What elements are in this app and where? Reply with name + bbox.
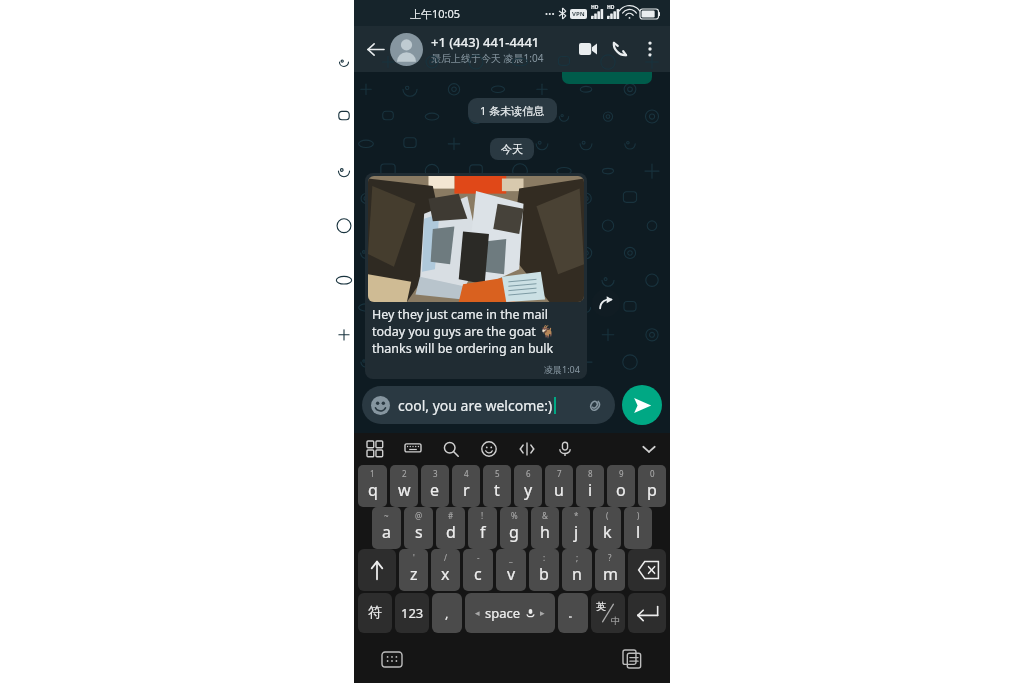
staticText: 0 xyxy=(650,468,655,479)
button[interactable]: % xyxy=(500,507,528,549)
staticText: b xyxy=(539,563,549,585)
staticText: ( xyxy=(606,510,609,521)
button[interactable]: 。 xyxy=(558,593,588,633)
button[interactable]: ; xyxy=(562,549,592,591)
staticText: ! xyxy=(481,510,484,521)
button[interactable]: @ xyxy=(404,507,433,549)
button[interactable]: Attach xyxy=(582,393,606,417)
button[interactable]: 9 xyxy=(607,465,635,507)
staticText: VPN xyxy=(572,10,585,18)
button[interactable]: 1 xyxy=(358,465,387,507)
button[interactable]: ! xyxy=(468,507,497,549)
staticText: p xyxy=(647,479,657,501)
staticText: 1 条未读信息 xyxy=(480,103,545,118)
button[interactable]: 符 xyxy=(358,593,392,633)
button[interactable]: Enter xyxy=(628,593,666,633)
staticText: ' xyxy=(413,552,415,563)
staticText: & xyxy=(542,510,548,521)
staticText: y xyxy=(524,479,533,501)
button[interactable] xyxy=(390,33,423,66)
staticText: 今天 xyxy=(501,142,523,156)
button[interactable]: Backspace xyxy=(628,549,666,591)
button[interactable]: 3 xyxy=(421,465,449,507)
staticText: : xyxy=(543,552,546,563)
button[interactable]: Send xyxy=(622,385,662,425)
button[interactable]: 6 xyxy=(514,465,542,507)
staticText: s xyxy=(415,521,423,543)
staticText: i xyxy=(588,479,593,501)
button[interactable]: Translate xyxy=(516,438,538,460)
staticText: a xyxy=(382,521,391,543)
button[interactable]: Hide keyboard xyxy=(638,438,660,460)
staticText: # xyxy=(448,510,454,521)
button[interactable]: Emoji xyxy=(478,438,500,460)
button[interactable]: Keyboard xyxy=(402,438,424,460)
button[interactable]: / xyxy=(431,549,460,591)
button[interactable]: Shift xyxy=(358,549,396,591)
button[interactable]: ~ xyxy=(372,507,401,549)
button[interactable]: 2 xyxy=(390,465,418,507)
button[interactable]: ' xyxy=(399,549,428,591)
button[interactable]: 4 xyxy=(452,465,480,507)
staticText: % xyxy=(511,510,518,521)
button[interactable]: cool, you are welcome:) xyxy=(362,386,615,424)
staticText: g xyxy=(509,521,519,543)
button[interactable]: Hey they just came in the mail today you… xyxy=(365,173,587,379)
staticText: +1 (443) 441-4441 xyxy=(431,33,540,51)
button[interactable]: Clipboard xyxy=(618,645,646,673)
staticText: 3 xyxy=(433,468,438,479)
button[interactable]: ) xyxy=(624,507,652,549)
staticText: q xyxy=(368,479,378,501)
button[interactable]: , xyxy=(432,593,462,633)
staticText: d xyxy=(446,521,456,543)
button[interactable]: - xyxy=(463,549,493,591)
button[interactable]: Video call xyxy=(572,33,604,65)
staticText: 4 xyxy=(464,468,469,479)
button[interactable]: Tools xyxy=(364,438,386,460)
staticText: 7 xyxy=(557,468,562,479)
button[interactable]: : xyxy=(529,549,559,591)
staticText: c xyxy=(474,563,482,585)
staticText: r xyxy=(463,479,470,501)
staticText: 2 xyxy=(402,468,407,479)
button[interactable]: +1 (443) 441-4441 xyxy=(431,33,572,65)
button[interactable]: ◂ xyxy=(465,593,555,633)
staticText: e xyxy=(430,479,440,501)
button[interactable]: Forward xyxy=(592,289,620,317)
button[interactable]: 8 xyxy=(576,465,604,507)
button[interactable]: 5 xyxy=(483,465,511,507)
staticText: 123 xyxy=(401,604,424,622)
staticText: u xyxy=(554,479,564,501)
staticText: k xyxy=(603,521,612,543)
staticText: 1 xyxy=(370,468,375,479)
staticText: 凌晨1:04 xyxy=(544,363,580,375)
staticText: z xyxy=(410,563,418,585)
staticText: ▸ xyxy=(540,608,545,618)
button[interactable]: Back xyxy=(360,34,390,64)
button[interactable]: 0 xyxy=(638,465,666,507)
button[interactable]: # xyxy=(436,507,465,549)
button[interactable]: 7 xyxy=(545,465,573,507)
staticText: @ xyxy=(415,510,423,521)
staticText: j xyxy=(574,521,579,543)
button[interactable]: More options xyxy=(636,35,664,63)
staticText: Hey they just came in the mail today you… xyxy=(372,306,580,363)
button[interactable]: & xyxy=(531,507,559,549)
button[interactable]: Voice call xyxy=(604,33,636,65)
button[interactable]: 123 xyxy=(395,593,429,633)
staticText: * xyxy=(574,510,579,521)
button[interactable]: Switch keyboard xyxy=(378,645,406,673)
button[interactable]: ( xyxy=(593,507,621,549)
button[interactable]: 英 xyxy=(591,593,625,633)
staticText: cool, you are welcome:) xyxy=(398,396,553,415)
staticText: t xyxy=(494,479,500,501)
staticText: 9 xyxy=(619,468,624,479)
staticText: w xyxy=(398,479,411,501)
button[interactable]: ? xyxy=(595,549,625,591)
staticText: 5 xyxy=(495,468,500,479)
button[interactable]: Voice input xyxy=(554,438,576,460)
staticText: 最后上线于今天 凌晨1:04 xyxy=(431,51,544,65)
button[interactable]: Search xyxy=(440,438,462,460)
button[interactable]: _ xyxy=(496,549,526,591)
button[interactable]: * xyxy=(562,507,590,549)
